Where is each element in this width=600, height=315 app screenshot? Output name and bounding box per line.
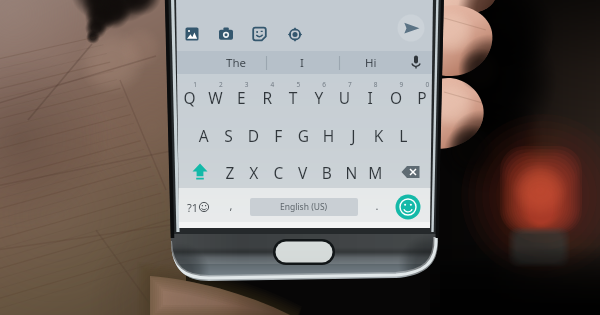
- button[interactable]: [0, 0, 600, 315]
